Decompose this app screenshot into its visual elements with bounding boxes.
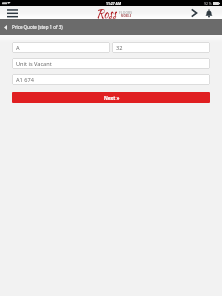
button[interactable]: Menu: [7, 7, 18, 18]
staticText: Next »: [104, 95, 120, 101]
button[interactable]: Notifications: [204, 8, 214, 18]
staticText: A: [16, 44, 20, 52]
button[interactable]: Next »: [12, 92, 210, 103]
staticText: A1 674: [16, 76, 34, 84]
button[interactable]: Forward: [189, 8, 199, 18]
staticText: 92 %: [204, 1, 212, 6]
staticText: Ross: [96, 6, 117, 19]
button[interactable]: 32: [112, 42, 210, 53]
staticText: FLOORS: [119, 10, 133, 14]
staticText: Unit is Vacant: [16, 60, 52, 68]
button[interactable]: A: [12, 42, 110, 53]
button[interactable]: A1 674: [12, 74, 210, 85]
button[interactable]: Price Quote (step 1 of 3): [4, 24, 63, 30]
button[interactable]: Unit is Vacant: [12, 58, 210, 69]
staticText: 32: [116, 44, 123, 52]
staticText: MOBILE: [121, 14, 132, 17]
staticText: Price Quote (step 1 of 3): [12, 24, 63, 30]
staticText: 11:27 AM: [106, 1, 122, 6]
